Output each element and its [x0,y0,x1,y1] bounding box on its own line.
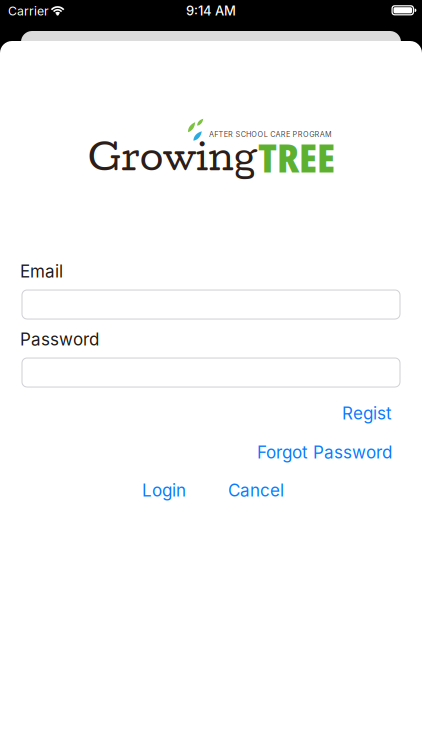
staticText: Login [142,480,186,501]
staticText: Regist [342,403,392,424]
button[interactable]: Forgot Password [257,442,392,463]
staticText: AFTER SCHOOL CARE PROGRAM [209,130,332,139]
button[interactable]: Cancel [228,480,284,501]
staticText: Cancel [228,480,284,501]
staticText: Password [20,329,99,350]
staticText: Growing [88,134,257,178]
button[interactable]: Regist [342,403,392,424]
button[interactable]: Login [142,480,186,501]
staticText: Forgot Password [257,442,392,463]
staticText: 9:14 AM [186,3,236,19]
staticText: Carrier [8,3,49,18]
staticText: TREE [258,132,335,184]
staticText: Email [20,261,63,282]
